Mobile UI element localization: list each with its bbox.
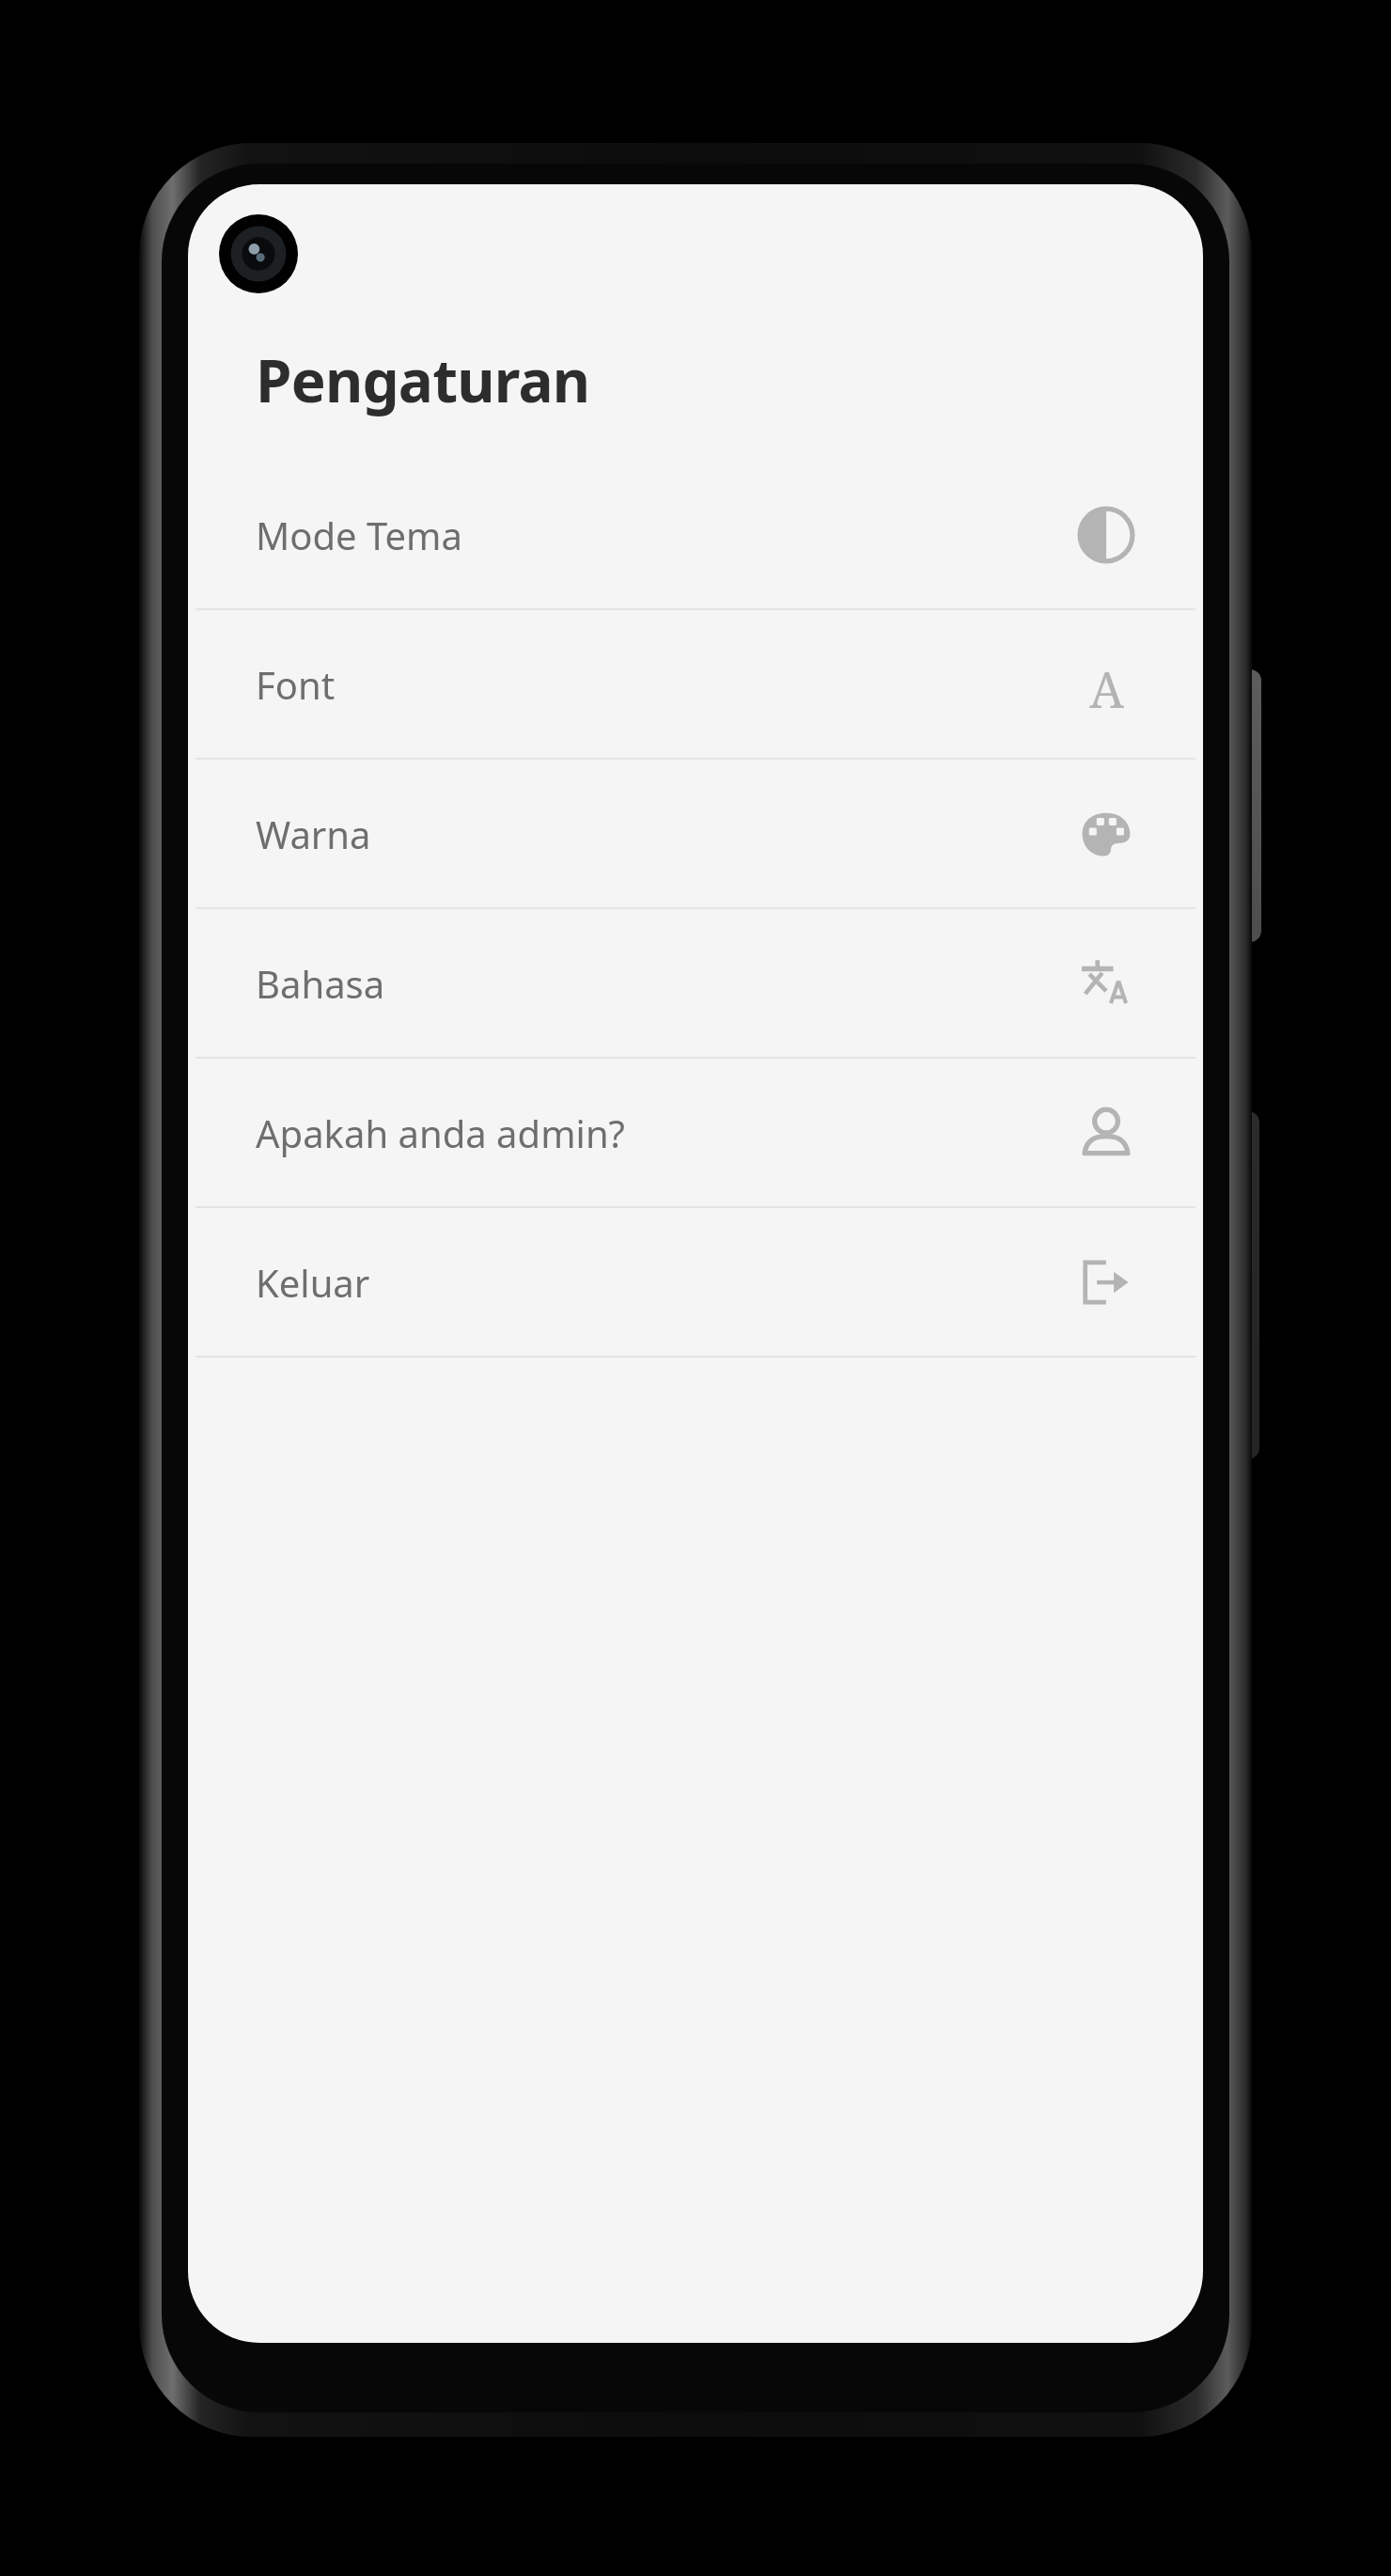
button[interactable]: Warna [188, 760, 1203, 907]
other: Font [1077, 655, 1135, 714]
button[interactable]: Keluar [188, 1208, 1203, 1356]
staticText: Keluar [256, 1257, 370, 1308]
button[interactable]: Mode Tema [188, 461, 1203, 608]
button[interactable]: Bahasa [188, 909, 1203, 1057]
other: Colors [1077, 805, 1135, 863]
staticText: Pengaturan [256, 340, 590, 419]
other: Admin [1077, 1104, 1135, 1162]
other: Front camera [219, 214, 298, 293]
staticText: Warna [256, 809, 371, 859]
button[interactable]: Font [188, 610, 1203, 758]
other: Log out [1077, 1253, 1135, 1312]
button[interactable]: Apakah anda admin? [188, 1059, 1203, 1206]
staticText: Font [256, 659, 336, 710]
staticText: Bahasa [256, 958, 385, 1009]
staticText: Mode Tema [256, 510, 462, 560]
other: Theme mode [1077, 506, 1135, 564]
other: Language [1077, 954, 1135, 1013]
staticText: A [1089, 655, 1124, 714]
staticText: Apakah anda admin? [256, 1107, 625, 1158]
